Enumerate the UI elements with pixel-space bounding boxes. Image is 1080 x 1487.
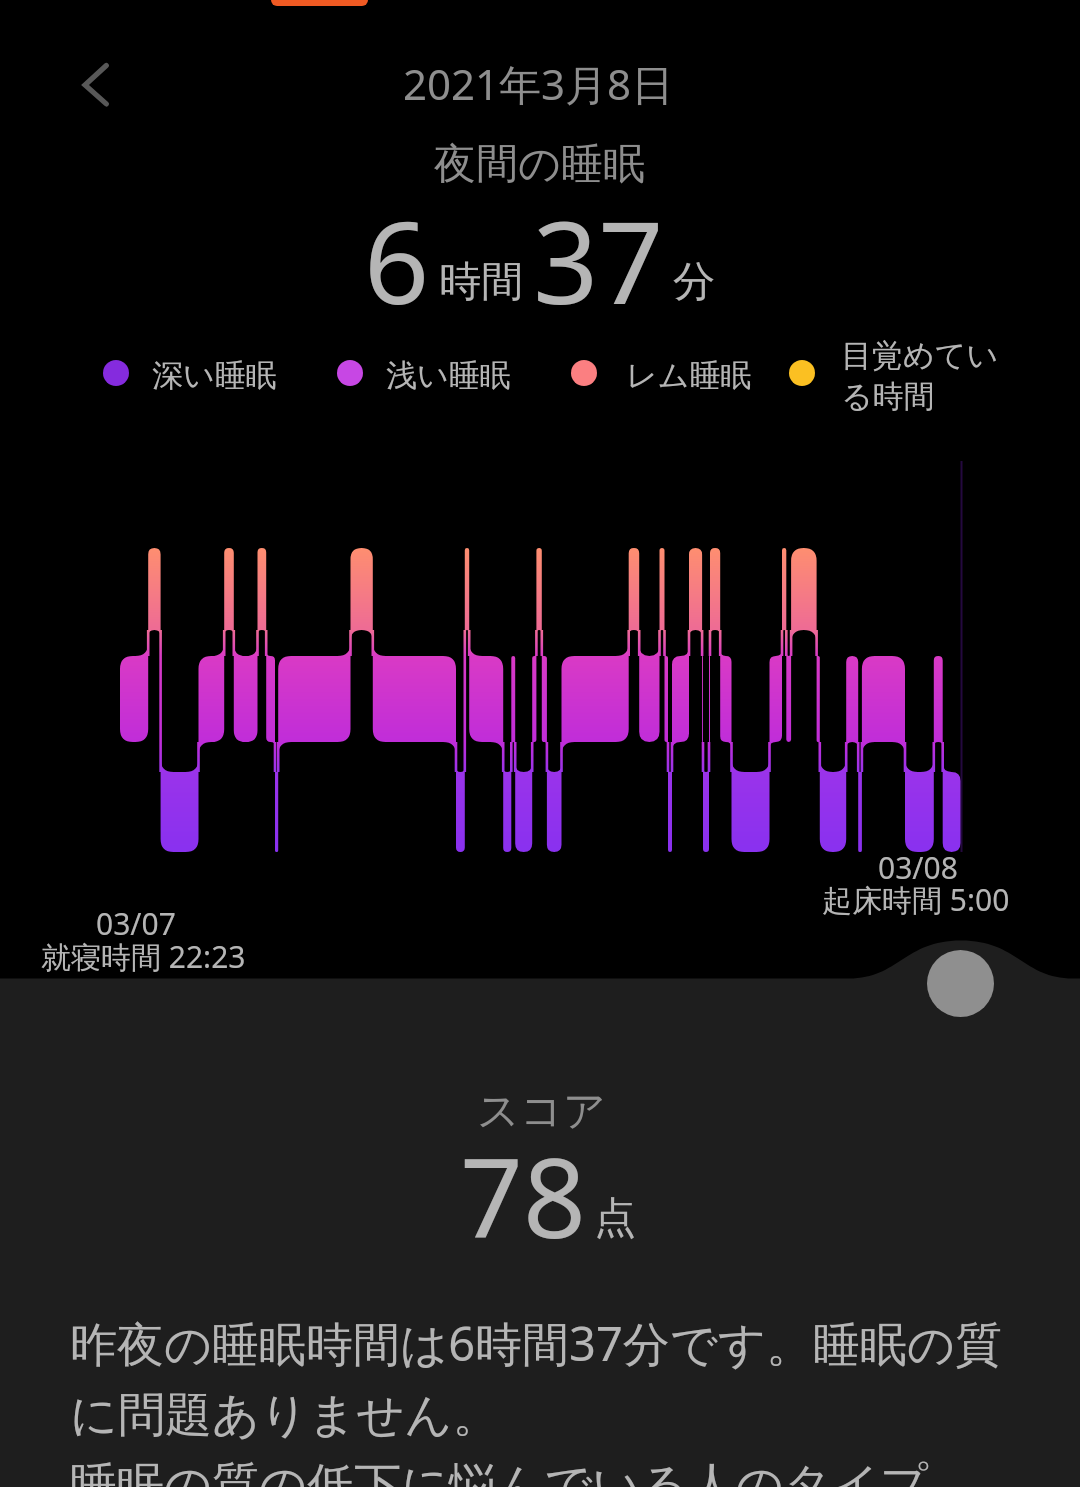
staticText: 浅い睡眠 xyxy=(386,356,511,395)
staticText: 就寝時間 22:23 xyxy=(41,936,246,977)
staticText: 分 xyxy=(673,256,715,309)
staticText: 03/07 xyxy=(96,903,176,944)
staticText: 78 xyxy=(460,1120,586,1270)
staticText: 2021年3月8日 xyxy=(403,55,674,112)
staticText: 03/08 xyxy=(878,847,958,888)
staticText: 37 xyxy=(533,182,664,337)
staticText: 昨夜の睡眠時間は6時間37分です。睡眠の質に問題ありません。 睡眠の質の低下に悩… xyxy=(70,1311,1015,1487)
staticText: 6 xyxy=(364,182,430,337)
button[interactable]: Back xyxy=(55,45,135,125)
button[interactable]: Play xyxy=(927,950,994,1017)
staticText: 起床時間 5:00 xyxy=(822,879,1010,920)
staticText: 目覚めている時間 xyxy=(841,336,1001,417)
staticText: スコア xyxy=(477,1085,606,1138)
staticText: 時間 xyxy=(439,256,523,309)
staticText: 深い睡眠 xyxy=(152,356,277,395)
staticText: レム睡眠 xyxy=(626,356,752,395)
staticText: 点 xyxy=(594,1192,636,1245)
staticText: 夜間の睡眠 xyxy=(434,138,645,191)
